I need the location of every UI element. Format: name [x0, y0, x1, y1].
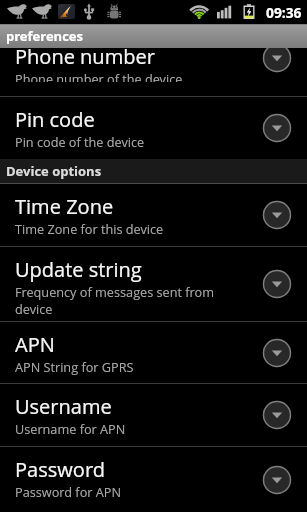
- button[interactable]: Expand Time Zone: [262, 200, 292, 230]
- button[interactable]: Pin code: [0, 97, 307, 159]
- button[interactable]: Expand APN: [262, 338, 292, 368]
- staticText: Phone number of the device: [15, 70, 183, 82]
- button[interactable]: APN: [0, 322, 307, 383]
- staticText: APN: [15, 331, 55, 358]
- button[interactable]: Time Zone: [0, 184, 307, 246]
- button[interactable]: Password: [0, 447, 307, 512]
- staticText: 09:36: [266, 3, 302, 22]
- button[interactable]: Expand Update string: [262, 269, 292, 299]
- staticText: Update string: [15, 256, 142, 283]
- staticText: Pin code of the device: [15, 133, 145, 150]
- staticText: Phone number: [15, 48, 155, 70]
- staticText: Password for APN: [15, 483, 121, 500]
- staticText: preferences: [6, 27, 83, 45]
- button[interactable]: Expand Pin code: [262, 113, 292, 143]
- staticText: Password: [15, 456, 105, 483]
- staticText: Frequency of messages sent from device: [15, 283, 248, 317]
- staticText: Pin code: [15, 106, 95, 133]
- staticText: Time Zone for this device: [15, 220, 164, 237]
- staticText: APN String for GPRS: [15, 358, 134, 375]
- staticText: Username for APN: [15, 420, 126, 437]
- staticText: Username: [15, 393, 112, 420]
- button[interactable]: Expand Phone number: [262, 48, 292, 73]
- staticText: Device options: [6, 162, 102, 180]
- button[interactable]: Expand Password: [262, 465, 292, 495]
- button[interactable]: Username: [0, 384, 307, 446]
- button[interactable]: Expand Username: [262, 400, 292, 430]
- staticText: Time Zone: [15, 193, 114, 220]
- button[interactable]: Phone number: [0, 48, 307, 82]
- button[interactable]: Update string: [0, 247, 307, 321]
